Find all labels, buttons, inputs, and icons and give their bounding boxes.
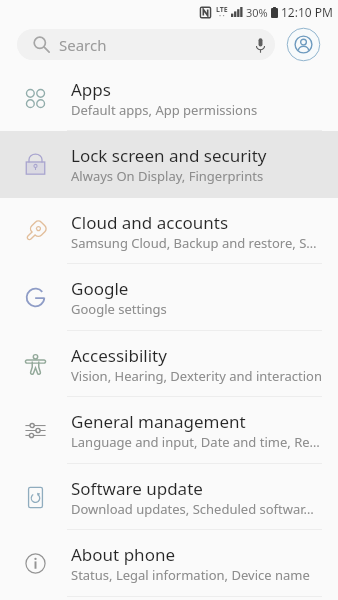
staticText: Download updates, Scheduled softwar…: [71, 500, 314, 518]
staticText: Language and input, Date and time, Re…: [71, 433, 320, 451]
staticText: Default apps, App permissions: [71, 101, 258, 119]
button[interactable]: Apps: [0, 65, 338, 131]
staticText: Apps: [71, 78, 111, 101]
staticText: Google settings: [71, 300, 167, 318]
staticText: Status, Legal information, Device name: [71, 566, 310, 584]
staticText: 12:10 PM: [281, 4, 333, 20]
button[interactable]: Google: [0, 264, 338, 331]
button[interactable]: About phone: [0, 530, 338, 597]
staticText: General management: [71, 410, 246, 433]
button[interactable]: Voice search: [245, 30, 275, 60]
button[interactable]: Account: [286, 27, 321, 62]
staticText: Samsung Cloud, Backup and restore, S…: [71, 234, 317, 252]
button[interactable]: Accessibility: [0, 331, 338, 397]
staticText: Search: [59, 35, 107, 55]
button[interactable]: Cloud and accounts: [0, 198, 338, 264]
staticText: Lock screen and security: [71, 144, 267, 167]
button[interactable]: Search: [17, 29, 275, 60]
staticText: Cloud and accounts: [71, 211, 229, 234]
button[interactable]: Software update: [0, 464, 338, 530]
staticText: Google: [71, 277, 129, 300]
staticText: LTE: [216, 5, 228, 15]
staticText: Always On Display, Fingerprints: [71, 167, 264, 185]
staticText: 30%: [246, 5, 268, 20]
button[interactable]: Lock screen and security: [0, 131, 338, 198]
staticText: Accessibility: [71, 344, 167, 367]
button[interactable]: General management: [0, 397, 338, 464]
staticText: Vision, Hearing, Dexterity and interacti…: [71, 367, 322, 385]
staticText: Software update: [71, 477, 203, 500]
staticText: About phone: [71, 543, 176, 566]
